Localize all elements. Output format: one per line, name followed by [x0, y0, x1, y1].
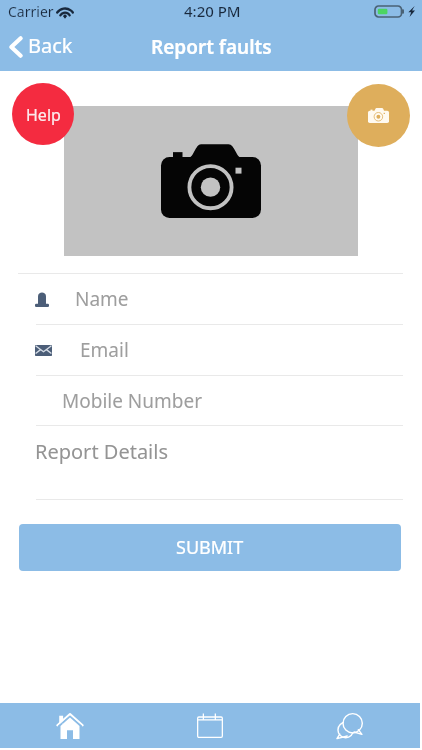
button[interactable]: Mobile Number: [0, 376, 422, 425]
button[interactable]: Back: [0, 30, 83, 63]
button[interactable]: Report Details: [0, 426, 422, 499]
staticText: Report faults: [151, 34, 272, 60]
staticText: Report Details: [35, 438, 169, 465]
staticText: Back: [28, 32, 73, 59]
button[interactable]: Calendar: [140, 703, 280, 748]
staticText: Carrier: [8, 2, 54, 21]
button[interactable]: Home: [0, 703, 140, 748]
button[interactable]: Help: [12, 83, 74, 145]
button[interactable]: Email: [0, 325, 422, 375]
staticText: 4:20 PM: [184, 1, 241, 21]
staticText: Help: [26, 104, 61, 126]
button[interactable]: Messages: [280, 703, 420, 748]
staticText: SUBMIT: [176, 535, 244, 560]
staticText: Email: [80, 337, 129, 363]
button[interactable]: Name: [0, 274, 422, 324]
button[interactable]: Take a photo: [347, 84, 410, 147]
staticText: Mobile Number: [62, 388, 203, 414]
button[interactable]: SUBMIT: [19, 524, 401, 571]
staticText: Name: [75, 286, 129, 312]
